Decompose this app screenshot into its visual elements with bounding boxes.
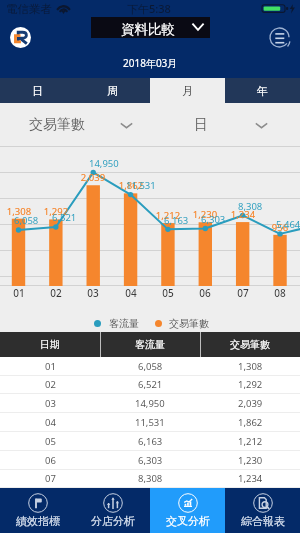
staticText: 1,308 — [3, 205, 35, 218]
staticText: 01 — [45, 360, 56, 373]
staticText: 08 — [264, 286, 296, 300]
button[interactable]: 績效指標 — [0, 488, 75, 533]
staticText: 1,234 — [227, 208, 259, 221]
button[interactable]: 綜合報表 — [225, 488, 300, 533]
staticText: 6,163 — [138, 435, 163, 448]
staticText: 956 — [264, 221, 296, 234]
button[interactable]: Menu — [266, 24, 292, 50]
staticText: 6,521 — [52, 211, 77, 224]
staticText: 月 — [182, 84, 193, 98]
staticText: 04 — [115, 286, 147, 300]
button[interactable]: 01 — [0, 357, 300, 376]
staticText: 1,292 — [40, 205, 72, 218]
staticText: 06 — [189, 286, 221, 300]
button[interactable]: 日期 — [0, 332, 100, 357]
staticText: 2,039 — [238, 397, 263, 410]
staticText: 資料比較 — [121, 21, 175, 38]
staticText: 分店分析 — [91, 514, 135, 528]
staticText: 績效指標 — [16, 514, 60, 528]
button[interactable]: 交易筆數 — [29, 115, 135, 135]
button[interactable]: 日 — [0, 78, 75, 103]
staticText: 綜合報表 — [241, 514, 285, 528]
staticText: 1,862 — [238, 416, 263, 429]
staticText: 03 — [77, 286, 109, 300]
staticText: 14,950 — [89, 157, 119, 170]
staticText: 1,230 — [238, 454, 263, 467]
staticText: 6,521 — [138, 378, 163, 391]
staticText: 05 — [152, 286, 184, 300]
staticText: 年 — [257, 84, 268, 98]
staticText: 日 — [194, 116, 208, 134]
button[interactable]: 周 — [75, 78, 150, 103]
staticText: 客流量 — [135, 338, 165, 351]
staticText: 04 — [45, 416, 56, 429]
staticText: 交易筆數 — [230, 338, 270, 351]
button[interactable]: 交叉分析 — [150, 488, 225, 533]
staticText: 8,308 — [138, 472, 163, 485]
button[interactable]: 04 — [0, 413, 300, 432]
staticText: 6,163 — [164, 214, 189, 227]
staticText: 2,039 — [77, 171, 109, 184]
staticText: 07 — [227, 286, 259, 300]
staticText: 1,234 — [238, 472, 263, 485]
staticText: 1,292 — [238, 378, 263, 391]
staticText: 交易筆數 — [169, 317, 209, 330]
button[interactable]: 年 — [225, 78, 300, 103]
button[interactable]: Home logo — [10, 27, 31, 48]
button[interactable]: 日 — [194, 115, 270, 135]
staticText: 客流量 — [109, 317, 139, 330]
staticText: 2018年03月 — [123, 56, 178, 70]
staticText: 周 — [107, 84, 118, 98]
staticText: 下午5:38 — [127, 1, 171, 16]
button[interactable]: 05 — [0, 432, 300, 451]
staticText: 6,058 — [138, 360, 163, 373]
staticText: 交易筆數 — [29, 116, 85, 134]
staticText: 11,531 — [135, 416, 165, 429]
button[interactable]: 客流量 — [100, 332, 200, 357]
staticText: 02 — [40, 286, 72, 300]
staticText: 交叉分析 — [166, 514, 210, 528]
staticText: 6,303 — [201, 213, 226, 226]
staticText: 1,308 — [238, 360, 263, 373]
button[interactable]: 月 — [150, 78, 225, 103]
staticText: 6,058 — [14, 214, 39, 227]
staticText: 05 — [45, 435, 56, 448]
staticText: 5,464 — [276, 218, 300, 231]
staticText: 07 — [45, 472, 56, 485]
button[interactable]: 資料比較 — [91, 17, 210, 38]
staticText: 6,303 — [138, 454, 163, 467]
staticText: 02 — [45, 378, 56, 391]
button[interactable]: 03 — [0, 394, 300, 413]
button[interactable]: 交易筆數 — [200, 332, 300, 357]
button[interactable]: 06 — [0, 451, 300, 470]
staticText: 電信業者 — [6, 2, 52, 16]
staticText: 1,212 — [238, 435, 263, 448]
staticText: 日 — [32, 84, 43, 98]
button[interactable]: 02 — [0, 375, 300, 394]
staticText: 8,308 — [238, 200, 263, 213]
staticText: 1,862 — [115, 179, 147, 192]
staticText: 01 — [3, 286, 35, 300]
staticText: 1,212 — [152, 209, 184, 222]
staticText: 11,531 — [126, 179, 156, 192]
button[interactable]: 07 — [0, 469, 300, 488]
staticText: 1,230 — [189, 208, 221, 221]
staticText: 日期 — [40, 338, 60, 351]
staticText: 14,950 — [135, 397, 165, 410]
staticText: 06 — [45, 454, 56, 467]
staticText: 03 — [45, 397, 56, 410]
button[interactable]: 分店分析 — [75, 488, 150, 533]
